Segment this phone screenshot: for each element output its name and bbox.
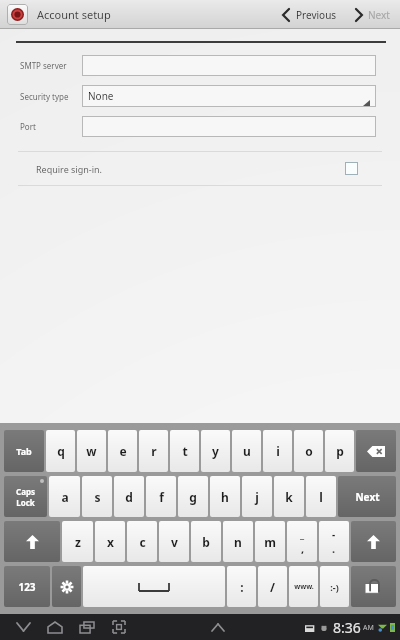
staticText: , <box>301 541 305 556</box>
button[interactable]: r <box>139 430 168 472</box>
button[interactable]: 123 <box>4 566 50 607</box>
staticText: Next <box>368 8 390 22</box>
staticText: m <box>264 534 276 550</box>
staticText: k <box>285 489 293 505</box>
button[interactable]: f <box>146 476 176 517</box>
button[interactable]: Home <box>42 614 68 640</box>
button[interactable]: Previous <box>279 4 340 26</box>
button[interactable]: w <box>77 430 106 472</box>
staticText: Tab <box>16 445 32 457</box>
staticText: l <box>319 489 323 505</box>
button[interactable]: Require sign-in. <box>0 152 400 185</box>
staticText: : <box>240 579 244 595</box>
staticText: 123 <box>18 580 36 594</box>
button[interactable]: :-) <box>320 566 349 607</box>
staticText: i <box>276 443 280 459</box>
button[interactable]: _ <box>287 521 317 562</box>
button[interactable]: Recent apps <box>74 614 100 640</box>
staticText: SMTP server <box>20 60 67 71</box>
button[interactable]: e <box>108 430 137 472</box>
staticText: t <box>182 443 188 459</box>
button[interactable]: None <box>82 85 376 107</box>
staticText: p <box>336 443 344 459</box>
button[interactable]: p <box>325 430 354 472</box>
button[interactable]: clip <box>351 566 396 607</box>
staticText: a <box>61 489 69 505</box>
button[interactable]: z <box>62 521 93 562</box>
staticText: q <box>57 443 65 459</box>
button[interactable]: q <box>46 430 75 472</box>
button[interactable]: Next <box>351 4 393 26</box>
button[interactable]: Back <box>10 614 36 640</box>
button[interactable]: App icon <box>7 4 28 25</box>
button[interactable]: v <box>159 521 189 562</box>
button[interactable]: g <box>178 476 208 517</box>
button[interactable]: x <box>95 521 125 562</box>
button[interactable]: d <box>114 476 144 517</box>
staticText: s <box>94 489 101 505</box>
staticText: Security type <box>20 91 69 102</box>
button[interactable]: k <box>274 476 304 517</box>
staticText: n <box>234 534 242 550</box>
button[interactable] <box>82 55 376 76</box>
button[interactable]: Show notifications <box>205 614 231 640</box>
button[interactable]: m <box>255 521 285 562</box>
button[interactable]: / <box>258 566 287 607</box>
button[interactable]: s <box>82 476 112 517</box>
button[interactable]: o <box>294 430 323 472</box>
staticText: 8:36 <box>333 618 361 637</box>
staticText: b <box>202 534 210 550</box>
staticText: j <box>255 489 259 505</box>
staticText: Account setup <box>37 7 111 22</box>
staticText: . <box>332 541 336 556</box>
staticText: d <box>125 489 133 505</box>
staticText: x <box>107 534 114 550</box>
button[interactable]: l <box>306 476 336 517</box>
button[interactable]: a <box>49 476 80 517</box>
staticText: Caps Lock <box>16 486 35 508</box>
button[interactable]: www. <box>289 566 318 607</box>
button[interactable]: j <box>242 476 272 517</box>
button[interactable] <box>82 116 376 137</box>
button[interactable]: gear <box>52 566 81 607</box>
button[interactable]: i <box>263 430 292 472</box>
button[interactable]: h <box>210 476 240 517</box>
staticText: c <box>139 534 146 550</box>
button[interactable]: u <box>232 430 261 472</box>
staticText: - <box>332 527 336 541</box>
staticText: None <box>88 89 114 103</box>
button[interactable]: t <box>170 430 199 472</box>
staticText: www. <box>294 582 314 592</box>
button[interactable]: - <box>319 521 349 562</box>
button[interactable]: c <box>127 521 157 562</box>
button[interactable]: y <box>201 430 230 472</box>
staticText: _ <box>300 527 305 541</box>
staticText: Require sign-in. <box>36 163 102 175</box>
button[interactable]: b <box>191 521 221 562</box>
staticText: o <box>305 443 313 459</box>
button[interactable]: del <box>356 430 396 472</box>
staticText: Previous <box>296 8 337 22</box>
staticText: r <box>151 443 157 459</box>
staticText: g <box>189 489 197 505</box>
staticText: Next <box>355 490 380 504</box>
staticText: / <box>270 579 275 595</box>
button[interactable]: space <box>83 566 225 607</box>
button[interactable]: Caps Lock <box>4 476 47 517</box>
button[interactable]: shift <box>4 521 60 562</box>
staticText: w <box>86 443 97 459</box>
staticText: u <box>243 443 251 459</box>
staticText: v <box>171 534 178 550</box>
staticText: h <box>221 489 229 505</box>
button[interactable]: Next <box>338 476 396 517</box>
button[interactable]: : <box>227 566 256 607</box>
button[interactable]: 8:36 <box>305 618 400 637</box>
button[interactable]: Tab <box>4 430 44 472</box>
staticText: y <box>212 443 219 459</box>
staticText: z <box>75 534 81 550</box>
staticText: e <box>119 443 127 459</box>
button[interactable]: shift <box>351 521 396 562</box>
button[interactable]: n <box>223 521 253 562</box>
staticText: f <box>159 489 164 505</box>
button[interactable]: Fullscreen <box>106 614 132 640</box>
